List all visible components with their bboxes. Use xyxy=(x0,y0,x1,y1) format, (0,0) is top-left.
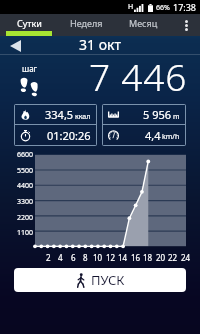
button[interactable]: 01:20:26 xyxy=(15,125,96,145)
staticText: 2 xyxy=(46,252,51,263)
staticText: 20 xyxy=(156,252,166,263)
staticText: 16 xyxy=(131,252,141,263)
staticText: Месяц xyxy=(129,17,158,29)
staticText: 31 окт xyxy=(79,35,121,54)
staticText: 3300 xyxy=(17,197,34,207)
staticText: 4400 xyxy=(17,181,34,191)
staticText: 24 xyxy=(181,252,191,263)
staticText: 66% xyxy=(156,3,170,13)
staticText: 2200 xyxy=(17,213,34,223)
button[interactable]: 5 956 xyxy=(103,105,185,124)
staticText: 5500 xyxy=(17,166,34,176)
button[interactable]: Previous day xyxy=(5,36,26,55)
staticText: 8 xyxy=(83,252,88,263)
button[interactable]: 4,4 xyxy=(103,125,185,145)
button[interactable]: ПУСК xyxy=(14,268,186,292)
staticText: 01:20:26 xyxy=(47,128,91,143)
staticText: ккал xyxy=(75,112,91,122)
staticText: 4,4 xyxy=(145,128,161,143)
staticText: 6600 xyxy=(17,150,34,160)
staticText: 7 446 xyxy=(89,51,188,91)
staticText: 18 xyxy=(143,252,153,263)
staticText: 4 xyxy=(58,252,63,263)
staticText: шаг xyxy=(22,63,38,74)
staticText: 10 xyxy=(93,252,103,263)
staticText: 17:38 xyxy=(173,1,197,13)
button[interactable]: Месяц xyxy=(115,14,172,36)
staticText: 6 xyxy=(71,252,76,263)
button[interactable]: Сутки xyxy=(0,14,58,36)
staticText: Неделя xyxy=(70,17,103,29)
staticText: 1100 xyxy=(17,228,34,238)
staticText: 22 xyxy=(168,252,178,263)
button[interactable]: Неделя xyxy=(58,14,115,36)
staticText: 14 xyxy=(118,252,128,263)
staticText: Сутки xyxy=(17,17,42,29)
button[interactable]: More options xyxy=(172,14,200,36)
staticText: m xyxy=(173,112,180,122)
staticText: H xyxy=(128,2,134,12)
button[interactable]: 334,5 xyxy=(15,105,96,124)
staticText: km/h xyxy=(162,132,180,142)
staticText: 5 956 xyxy=(143,107,172,122)
staticText: 12 xyxy=(106,252,116,263)
staticText: ПУСК xyxy=(91,271,125,289)
staticText: 334,5 xyxy=(45,107,74,122)
